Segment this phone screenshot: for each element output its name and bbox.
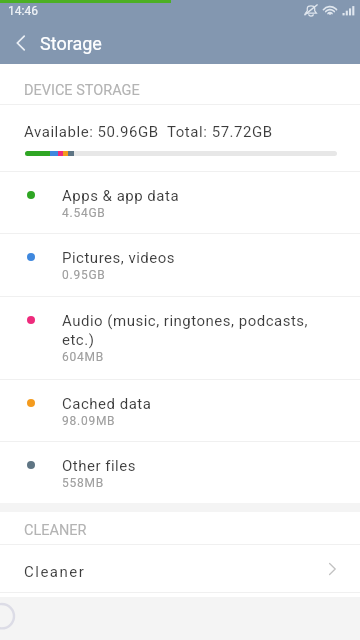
staticText: 0.95GB (62, 268, 106, 282)
staticText: Storage (40, 33, 102, 54)
button[interactable]: Back (0, 22, 42, 64)
staticText: 604MB (62, 350, 104, 364)
staticText: Apps & app data (62, 187, 180, 205)
staticText: Audio (music, ringtones, podcasts, etc.) (62, 312, 314, 349)
staticText: 14:46 (8, 4, 38, 18)
staticText: Available: 50.96GB Total: 57.72GB (24, 123, 273, 141)
button[interactable]: Apps & app data (0, 172, 360, 233)
button[interactable]: Other files (0, 442, 360, 503)
button[interactable]: Available: 50.96GB Total: 57.72GB (0, 105, 360, 171)
staticText: Other files (62, 457, 136, 475)
button[interactable]: Audio (music, ringtones, podcasts, etc.) (0, 297, 360, 379)
staticText: CLEANER (24, 522, 87, 539)
button[interactable]: Cached data (0, 380, 360, 441)
button[interactable]: Cleaner (0, 545, 360, 592)
staticText: Cleaner (24, 563, 86, 581)
staticText: 4.54GB (62, 206, 106, 220)
staticText: 98.09MB (62, 414, 116, 428)
staticText: DEVICE STORAGE (24, 82, 140, 99)
staticText: 558MB (62, 476, 104, 490)
staticText: Cached data (62, 395, 152, 413)
staticText: Pictures, videos (62, 249, 176, 267)
button[interactable]: Pictures, videos (0, 234, 360, 296)
